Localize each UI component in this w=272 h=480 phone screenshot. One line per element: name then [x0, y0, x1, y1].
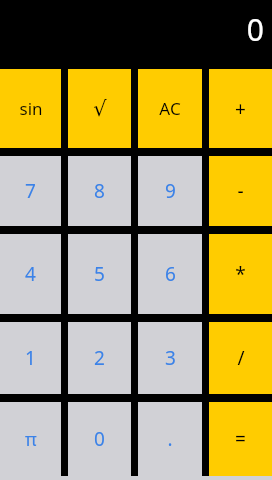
- staticText: 3: [165, 345, 176, 371]
- staticText: +: [235, 96, 246, 122]
- button[interactable]: +: [209, 69, 272, 148]
- button[interactable]: 7: [0, 156, 61, 226]
- staticText: sin: [19, 97, 43, 120]
- staticText: /: [237, 345, 245, 371]
- button[interactable]: 6: [138, 234, 202, 314]
- staticText: 0: [246, 9, 264, 50]
- button[interactable]: 0: [68, 402, 131, 476]
- button[interactable]: .: [138, 402, 202, 476]
- staticText: 0: [94, 426, 105, 452]
- button[interactable]: /: [209, 322, 272, 394]
- staticText: 8: [94, 178, 105, 204]
- button[interactable]: =: [209, 402, 272, 476]
- button[interactable]: sin: [0, 69, 61, 148]
- button[interactable]: 4: [0, 234, 61, 314]
- staticText: -: [237, 178, 244, 204]
- staticText: π: [25, 427, 37, 452]
- staticText: 1: [25, 345, 36, 371]
- staticText: 2: [94, 345, 105, 371]
- staticText: 7: [25, 178, 36, 204]
- button[interactable]: √: [68, 69, 131, 148]
- button[interactable]: -: [209, 156, 272, 226]
- staticText: 9: [165, 178, 176, 204]
- button[interactable]: 5: [68, 234, 131, 314]
- button[interactable]: 3: [138, 322, 202, 394]
- button[interactable]: 9: [138, 156, 202, 226]
- staticText: √: [93, 97, 107, 121]
- button[interactable]: π: [0, 402, 61, 476]
- button[interactable]: 2: [68, 322, 131, 394]
- staticText: 5: [94, 261, 105, 287]
- button[interactable]: 8: [68, 156, 131, 226]
- staticText: 6: [165, 261, 176, 287]
- button[interactable]: 1: [0, 322, 61, 394]
- staticText: 4: [25, 261, 36, 287]
- button[interactable]: *: [209, 234, 272, 314]
- staticText: AC: [159, 97, 181, 120]
- button[interactable]: AC: [138, 69, 202, 148]
- staticText: *: [235, 261, 246, 287]
- staticText: .: [167, 426, 173, 452]
- staticText: =: [235, 426, 246, 452]
